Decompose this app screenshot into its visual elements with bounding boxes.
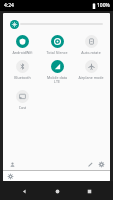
staticText: Airplane mode: [74, 75, 108, 80]
button[interactable]: User: [8, 160, 16, 168]
staticText: Cast: [5, 105, 40, 110]
staticText: AndroidWifi: [5, 50, 40, 55]
staticText: 100%: [97, 2, 110, 9]
button[interactable]: Cast: [5, 89, 40, 111]
button[interactable]: Bluetooth: [5, 59, 40, 81]
button[interactable]: Mobile data LTE: [40, 59, 74, 86]
button[interactable]: Home: [49, 183, 65, 199]
button[interactable]: Settings: [3, 171, 110, 181]
staticText: Total Silence: [40, 50, 74, 55]
button[interactable]: AndroidWifi: [5, 34, 40, 56]
button[interactable]: [10, 20, 19, 29]
button[interactable]: Total Silence: [40, 34, 74, 56]
button[interactable]: Edit: [86, 160, 94, 168]
button[interactable]: Recents: [81, 183, 97, 199]
staticText: Mobile data LTE: [40, 75, 74, 85]
button[interactable]: Auto-rotate: [74, 34, 108, 56]
staticText: Bluetooth: [5, 75, 40, 80]
staticText: 4:24: [4, 2, 14, 9]
button[interactable]: Settings: [97, 160, 105, 168]
staticText: Auto-rotate: [74, 50, 108, 55]
button[interactable]: Back: [16, 183, 32, 199]
button[interactable]: Airplane mode: [74, 59, 108, 81]
